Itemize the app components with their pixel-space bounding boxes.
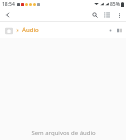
staticText: 85% xyxy=(110,1,120,8)
staticText: Sem arquivos de áudio xyxy=(31,129,96,137)
button[interactable]: Ordenar xyxy=(106,26,115,35)
button[interactable]: Voltar xyxy=(2,9,14,21)
button[interactable]: Áudio xyxy=(21,25,40,35)
staticText: 18:54 xyxy=(2,1,15,8)
button[interactable]: Selecionar xyxy=(115,26,124,35)
staticText: Áudio xyxy=(22,26,39,34)
button[interactable]: Pesquisar xyxy=(89,9,101,21)
button[interactable]: Alternar visualização xyxy=(101,9,113,21)
button[interactable]: Armazenamento interno xyxy=(3,25,14,36)
button[interactable]: Mais opções xyxy=(113,9,125,21)
